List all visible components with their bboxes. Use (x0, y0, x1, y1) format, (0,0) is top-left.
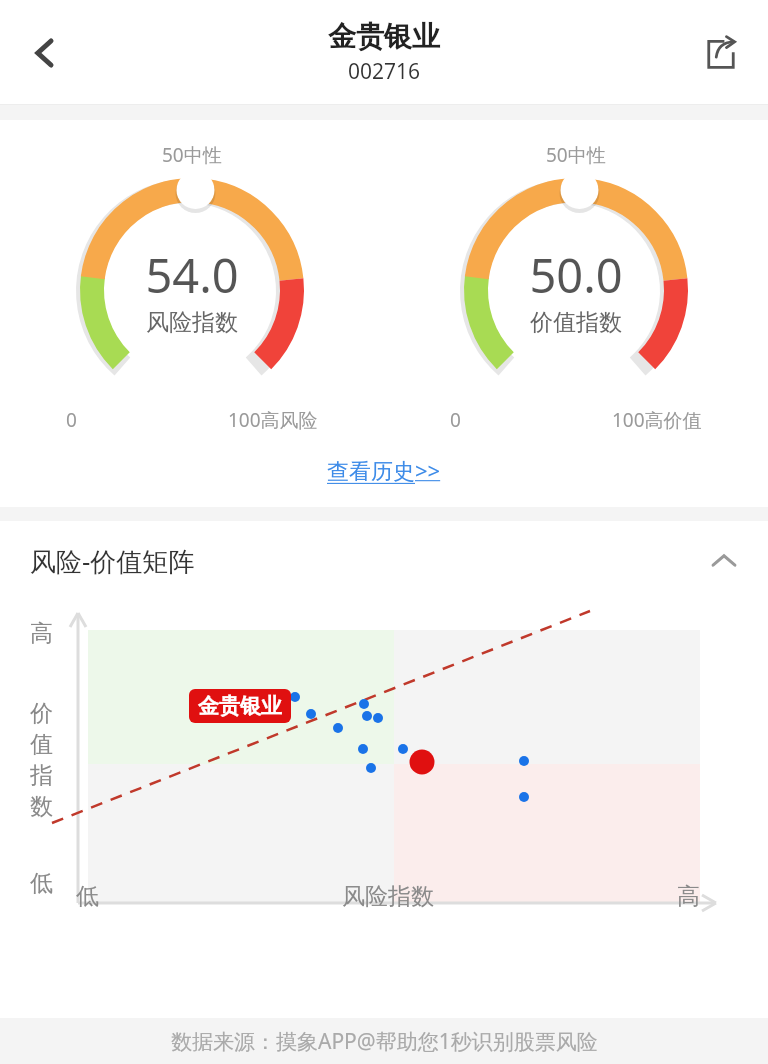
staticText: 100高风险 (228, 407, 318, 433)
staticText: 低 (76, 882, 99, 911)
staticText: 数据来源：摸象APP@帮助您1秒识别股票风险 (171, 1027, 598, 1056)
staticText: 指 (30, 761, 53, 790)
staticText: 金贵银业 (198, 693, 282, 719)
staticText: 值 (30, 730, 53, 759)
staticText: 0 (450, 407, 461, 433)
staticText: 风险-价值矩阵 (30, 543, 195, 579)
other: Collapse (704, 541, 744, 581)
staticText: 50.0 (529, 243, 623, 307)
staticText: 金贵银业 (328, 19, 440, 54)
staticText: 0 (66, 407, 77, 433)
button[interactable]: 查看历史>> (303, 445, 465, 495)
staticText: 002716 (348, 57, 421, 86)
staticText: 高 (30, 619, 53, 648)
staticText: 高 (677, 882, 700, 911)
staticText: 风险指数 (342, 882, 434, 911)
staticText: 50中性 (546, 142, 606, 168)
button[interactable]: Share (690, 22, 752, 84)
staticText: 50中性 (162, 142, 222, 168)
button[interactable]: 风险-价值矩阵 (0, 521, 768, 601)
staticText: 价值指数 (530, 308, 622, 337)
staticText: 数 (30, 792, 53, 821)
staticText: 低 (30, 869, 53, 898)
staticText: 查看历史>> (327, 455, 441, 485)
staticText: 100高价值 (612, 407, 702, 433)
staticText: 54.0 (145, 243, 239, 307)
staticText: 价 (30, 699, 53, 728)
staticText: 风险指数 (146, 308, 238, 337)
button[interactable]: Back (14, 22, 76, 84)
